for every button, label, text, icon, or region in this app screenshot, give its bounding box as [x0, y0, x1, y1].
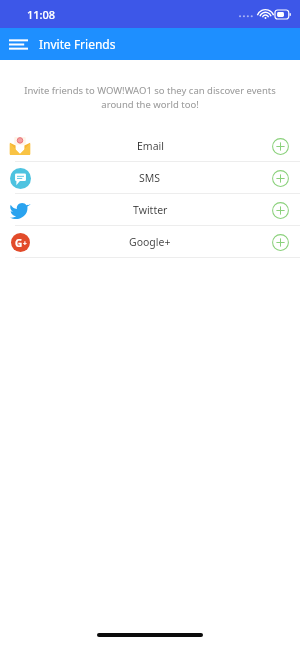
staticText: Google+	[129, 235, 171, 249]
button[interactable]: Add Twitter	[270, 200, 290, 220]
button[interactable]: Add Email	[270, 136, 290, 156]
staticText: G	[15, 236, 23, 250]
button[interactable]: Add Google+	[270, 232, 290, 252]
button[interactable]: Email	[0, 130, 300, 161]
staticText: Invite friends to WOW!WAO1 so they can d…	[16, 84, 284, 111]
button[interactable]: G	[0, 226, 300, 257]
staticText: Email	[137, 139, 164, 153]
staticText: SMS	[139, 171, 161, 185]
staticText: Invite Friends	[39, 36, 116, 52]
button[interactable]: Add SMS	[270, 168, 290, 188]
staticText: 11:08	[27, 7, 56, 22]
button[interactable]: Twitter	[0, 194, 300, 225]
staticText: +	[23, 239, 27, 248]
button[interactable]: Open navigation menu	[4, 30, 32, 58]
staticText: Twitter	[133, 203, 168, 217]
button[interactable]: SMS	[0, 162, 300, 193]
